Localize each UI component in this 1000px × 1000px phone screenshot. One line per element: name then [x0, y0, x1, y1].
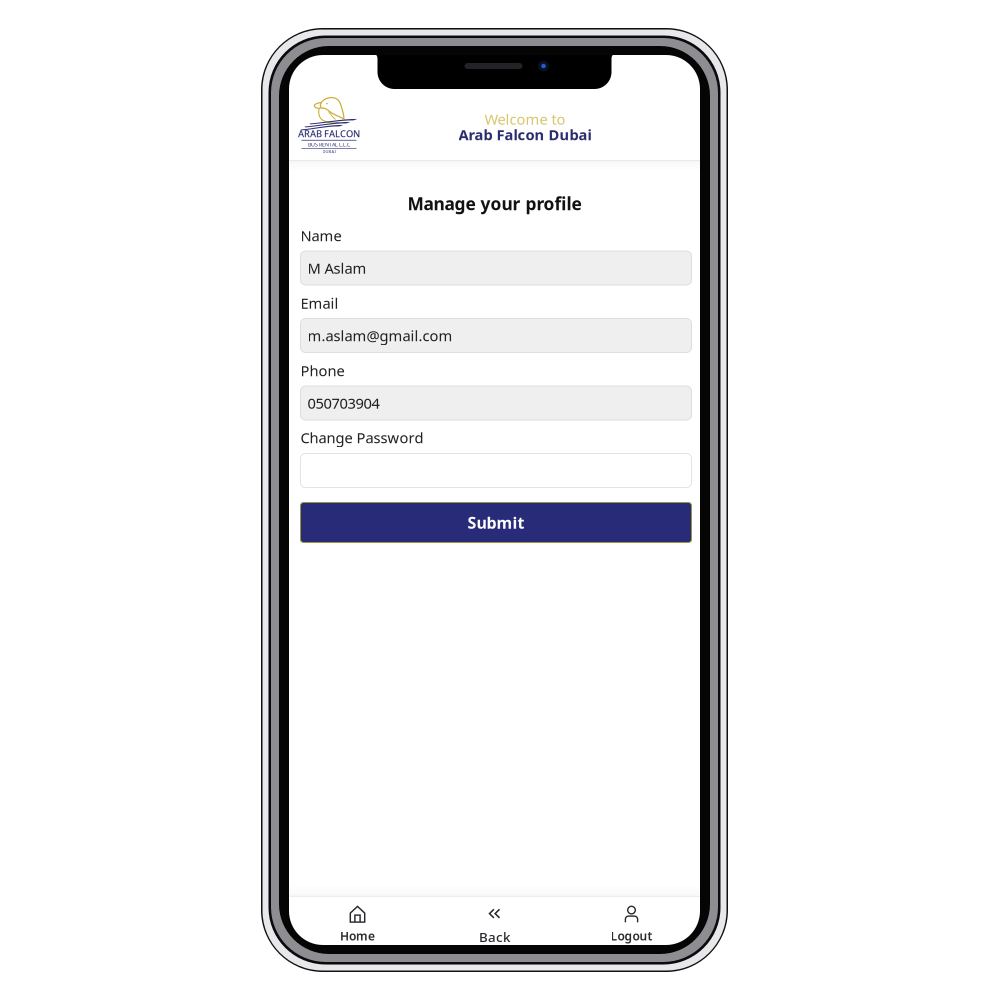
staticText: Phone [300, 361, 344, 380]
staticText: M Aslam [307, 258, 366, 278]
staticText: Change Password [300, 428, 423, 447]
staticText: Welcome to [484, 109, 565, 129]
button[interactable]: Home [289, 897, 426, 945]
staticText: Back [479, 928, 510, 946]
staticText: Name [300, 226, 341, 245]
staticText: Email [300, 293, 338, 313]
staticText: Manage your profile [407, 192, 581, 215]
button[interactable]: Logout [563, 897, 700, 945]
staticText: ARAB FALCON [298, 127, 360, 140]
staticText: 050703904 [307, 393, 379, 413]
staticText: Arab Falcon Dubai [458, 125, 591, 144]
button[interactable]: Submit [300, 502, 691, 542]
staticText: DUBAI [322, 149, 335, 154]
button[interactable]: Back [426, 897, 563, 945]
staticText: Home [340, 928, 375, 944]
staticText: Submit [467, 512, 524, 533]
staticText: m.aslam@gmail.com [307, 326, 452, 345]
staticText: BUS RENTAL L.L.C [308, 141, 350, 148]
staticText: Logout [610, 928, 652, 944]
